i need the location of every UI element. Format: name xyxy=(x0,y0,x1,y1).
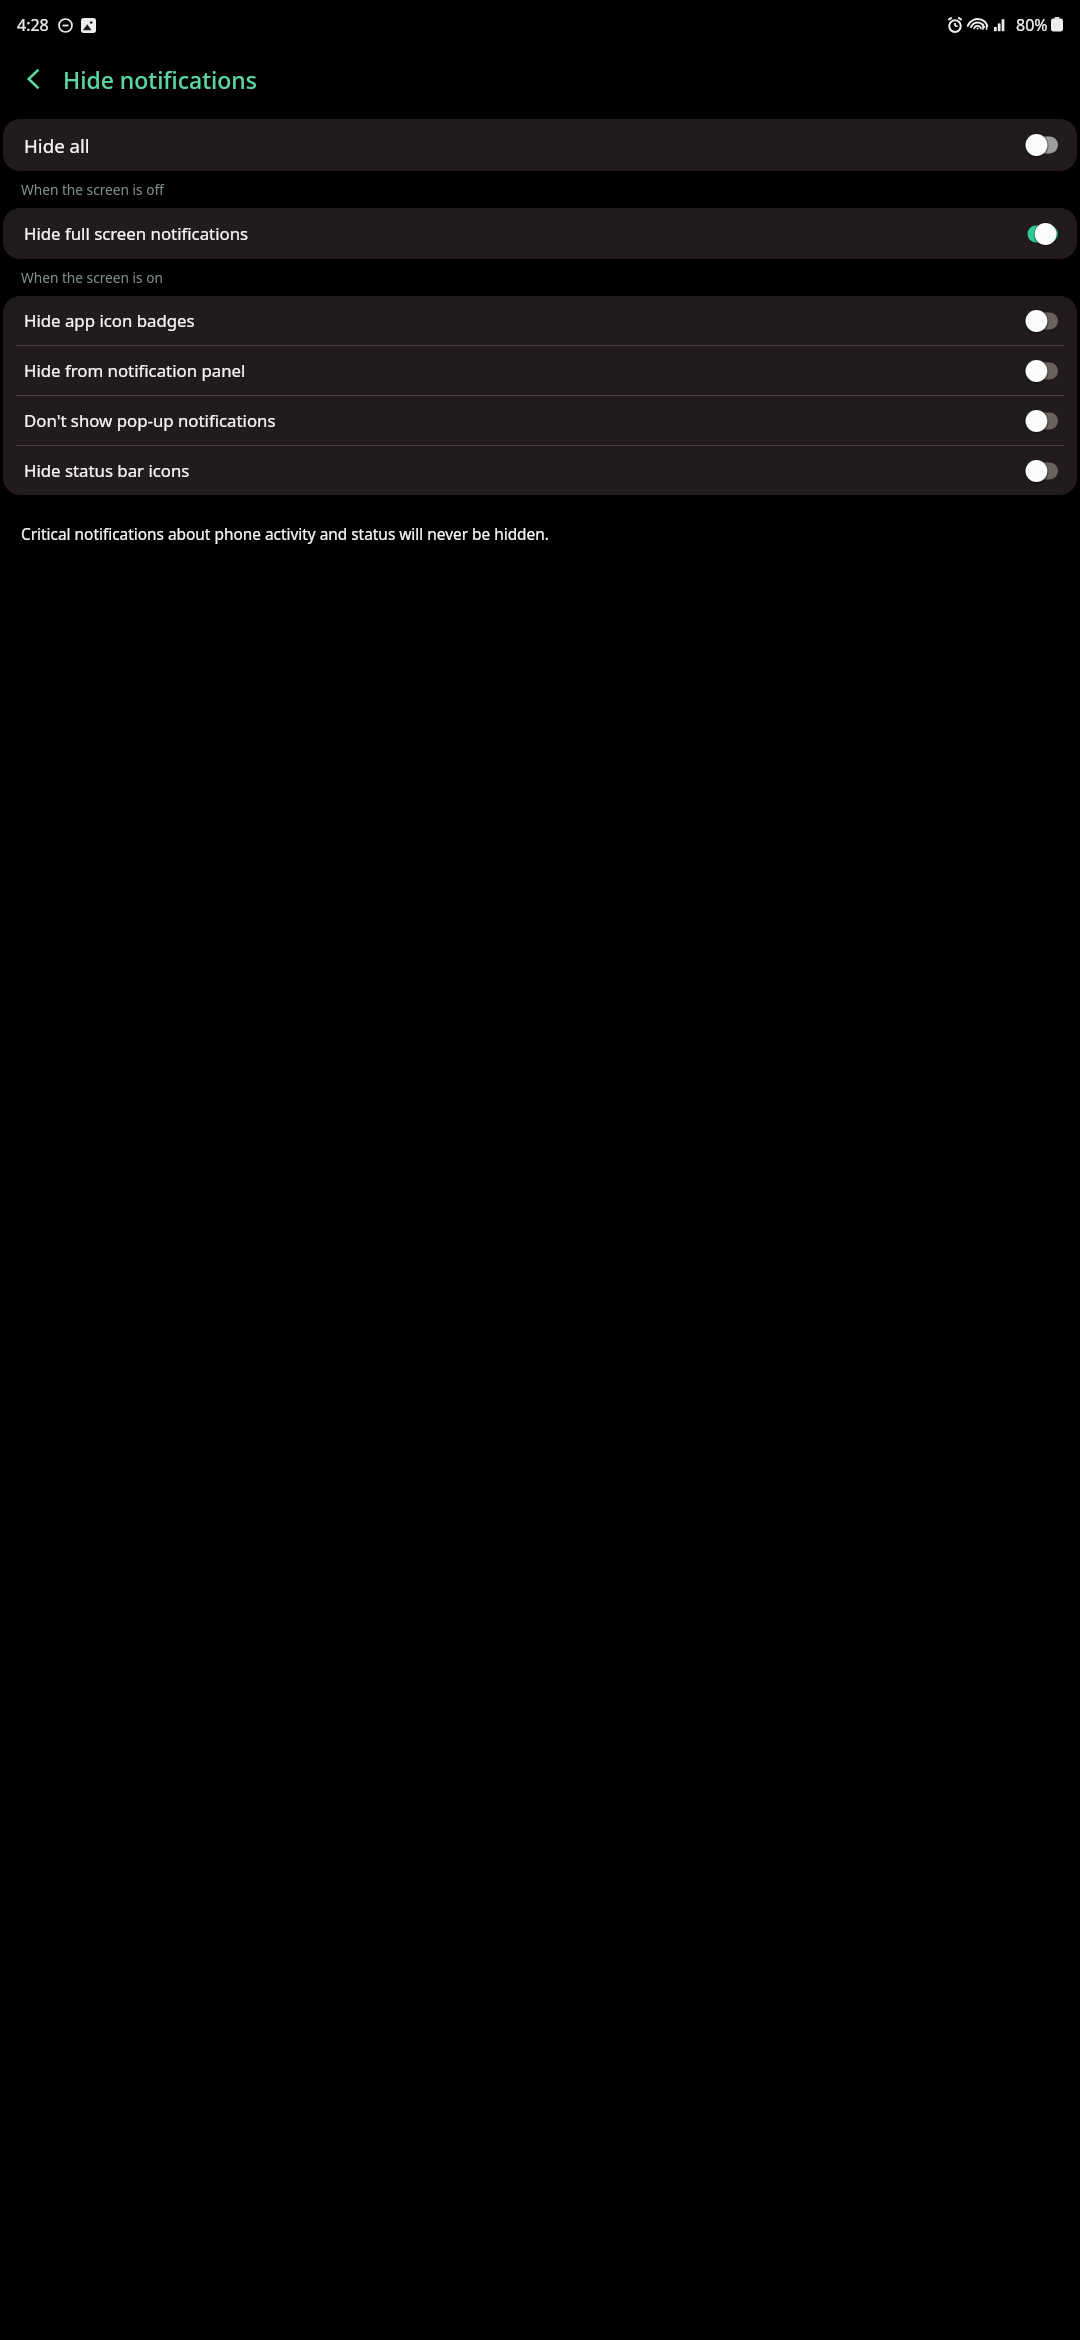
button[interactable]: Don't show pop-up notifications xyxy=(3,396,1077,445)
button[interactable]: Hide full screen notifications xyxy=(3,208,1077,259)
staticText: Hide app icon badges xyxy=(24,309,1024,332)
staticText: Hide full screen notifications xyxy=(24,222,1024,245)
other: Off xyxy=(1024,409,1058,433)
other: On xyxy=(1024,222,1058,246)
staticText: When the screen is off xyxy=(21,180,164,199)
staticText: 80% xyxy=(1016,14,1048,36)
staticText: When the screen is on xyxy=(21,268,163,287)
other: Off xyxy=(1024,133,1058,157)
other: Off xyxy=(1024,459,1058,483)
other: Off xyxy=(1024,309,1058,333)
staticText: Don't show pop-up notifications xyxy=(24,409,1024,432)
staticText: Hide notifications xyxy=(63,64,257,95)
staticText: Hide from notification panel xyxy=(24,359,1024,382)
button[interactable]: Back xyxy=(14,59,54,99)
staticText: Critical notifications about phone activ… xyxy=(21,524,549,545)
staticText: 4:28 xyxy=(17,14,49,36)
staticText: Hide status bar icons xyxy=(24,459,1024,482)
staticText: Hide all xyxy=(24,133,1024,158)
button[interactable]: Hide app icon badges xyxy=(3,296,1077,345)
button[interactable]: Hide status bar icons xyxy=(3,446,1077,495)
button[interactable]: Hide all xyxy=(3,119,1077,171)
button[interactable]: Hide from notification panel xyxy=(3,346,1077,395)
other: Off xyxy=(1024,359,1058,383)
